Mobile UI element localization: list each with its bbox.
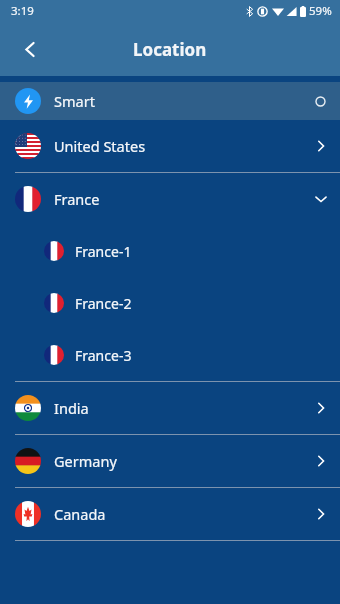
staticText: France-3: [75, 346, 132, 365]
staticText: France-2: [75, 294, 132, 313]
staticText: 59%: [309, 3, 332, 19]
button[interactable]: France-2: [0, 277, 340, 329]
button[interactable]: Back: [10, 29, 50, 69]
button[interactable]: France-3: [0, 329, 340, 381]
button[interactable]: Germany: [0, 435, 340, 487]
button[interactable]: Smart: [0, 82, 340, 120]
button[interactable]: France: [0, 173, 340, 225]
staticText: Canada: [54, 504, 314, 524]
staticText: France: [54, 189, 314, 209]
staticText: 3:19: [11, 3, 34, 19]
button[interactable]: France-1: [0, 225, 340, 277]
staticText: Germany: [54, 451, 314, 471]
button[interactable]: India: [0, 382, 340, 434]
staticText: India: [54, 398, 314, 418]
staticText: France-1: [75, 242, 132, 261]
staticText: United States: [54, 136, 314, 156]
staticText: Smart: [54, 91, 315, 111]
button[interactable]: Canada: [0, 488, 340, 540]
button[interactable]: United States: [0, 120, 340, 172]
staticText: Location: [133, 38, 207, 61]
